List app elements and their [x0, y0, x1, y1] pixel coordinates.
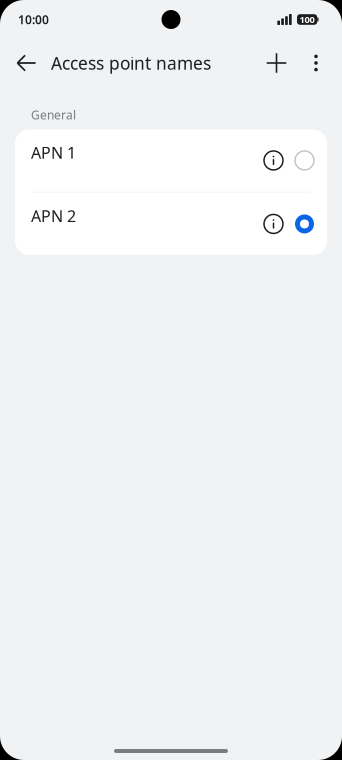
button[interactable]: APN 2	[15, 193, 327, 255]
staticText: 100	[300, 13, 315, 26]
button[interactable]: Select APN 1	[287, 129, 322, 191]
button[interactable]: More options	[299, 39, 333, 87]
staticText: General	[31, 107, 76, 123]
staticText: 10:00	[18, 11, 49, 27]
button[interactable]: Add	[254, 39, 299, 87]
button[interactable]: Back	[8, 39, 45, 87]
button[interactable]: About APN 1	[260, 129, 287, 191]
staticText: APN 2	[31, 205, 76, 226]
button[interactable]: About APN 2	[260, 193, 287, 255]
staticText: Access point names	[51, 51, 211, 74]
staticText: APN 1	[31, 142, 76, 163]
button[interactable]: APN 1	[15, 129, 327, 191]
button[interactable]: Select APN 2	[287, 193, 322, 255]
